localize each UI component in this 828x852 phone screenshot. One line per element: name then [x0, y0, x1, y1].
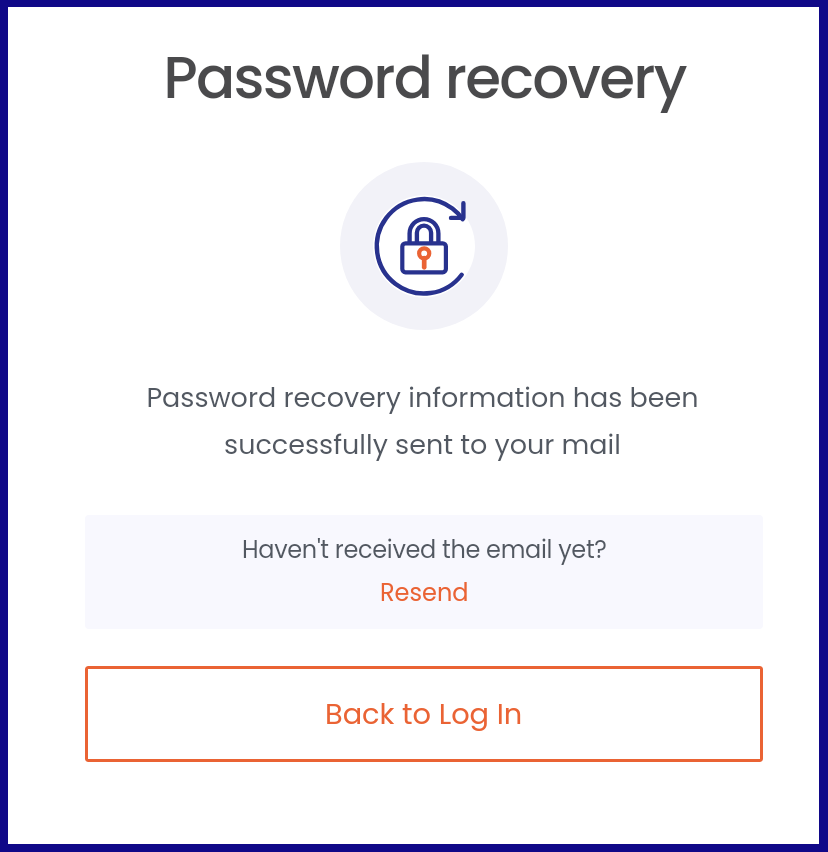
staticText: Haven't received the email yet? [242, 533, 607, 567]
staticText: Back to Log In [325, 694, 523, 734]
staticText: Password recovery information has been s… [146, 379, 699, 464]
staticText: Resend [380, 576, 469, 610]
other: Password reset [340, 162, 508, 330]
button[interactable]: Resend [370, 574, 479, 612]
button[interactable]: Back to Log In [85, 666, 763, 762]
staticText: Password recovery [163, 37, 686, 118]
